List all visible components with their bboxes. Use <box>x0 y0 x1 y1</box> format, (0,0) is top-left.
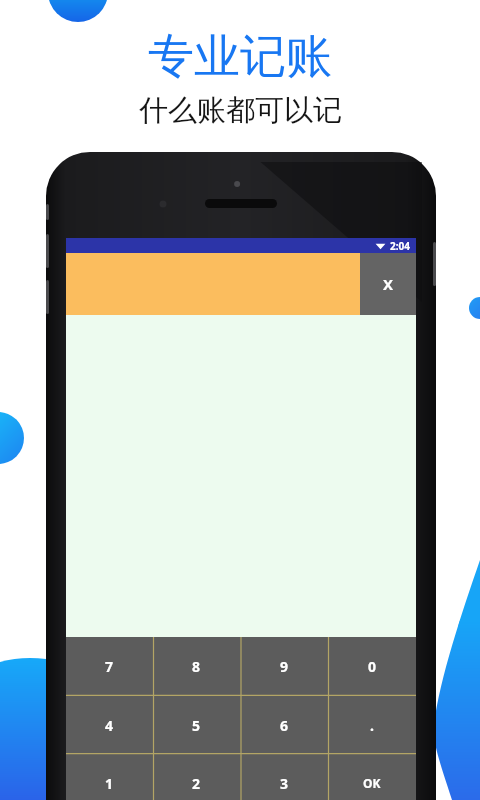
button[interactable]: . <box>328 696 416 754</box>
button[interactable]: 2 <box>153 754 240 800</box>
button[interactable]: Close <box>360 253 416 315</box>
staticText: X <box>383 274 394 294</box>
button[interactable]: 0 <box>328 637 416 696</box>
button[interactable]: 4 <box>66 696 153 754</box>
staticText: 5 <box>192 716 201 735</box>
staticText: OK <box>363 775 381 791</box>
staticText: 3 <box>280 774 289 793</box>
button[interactable]: 7 <box>66 637 153 696</box>
button[interactable]: 8 <box>153 637 240 696</box>
button[interactable]: 1 <box>66 754 153 800</box>
button[interactable]: 3 <box>240 754 328 800</box>
staticText: 8 <box>192 657 201 676</box>
staticText: 0 <box>368 657 377 676</box>
button[interactable]: 6 <box>240 696 328 754</box>
staticText: 1 <box>105 774 114 793</box>
staticText: . <box>370 716 374 735</box>
button[interactable]: OK <box>328 754 416 800</box>
staticText: 7 <box>105 657 114 676</box>
staticText: 6 <box>280 716 289 735</box>
staticText: 专业记账 <box>148 28 332 86</box>
button[interactable]: 5 <box>153 696 240 754</box>
button[interactable]: 9 <box>240 637 328 696</box>
staticText: 9 <box>280 657 289 676</box>
staticText: 2:04 <box>390 239 410 253</box>
staticText: 4 <box>105 716 114 735</box>
staticText: 什么账都可以记 <box>139 92 342 129</box>
staticText: 2 <box>192 774 201 793</box>
